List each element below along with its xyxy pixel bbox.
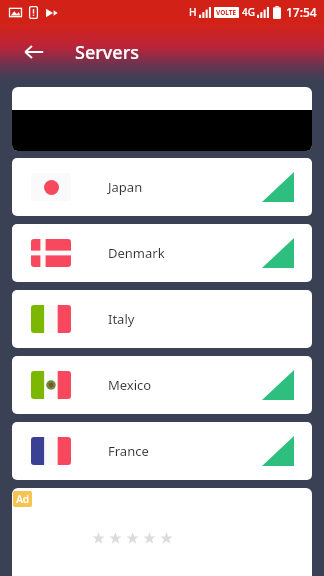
button[interactable]: Denmark — [12, 224, 312, 282]
staticText: Ad — [16, 492, 29, 506]
button[interactable]: Italy — [12, 290, 312, 348]
button[interactable]: Japan — [12, 158, 312, 216]
button[interactable]: France — [12, 422, 312, 480]
staticText: France — [108, 442, 149, 460]
staticText: Japan — [108, 178, 143, 196]
button[interactable] — [12, 87, 312, 151]
button[interactable]: Mexico — [12, 356, 312, 414]
staticText: H — [189, 5, 197, 19]
staticText: VOLTE — [216, 8, 237, 17]
staticText: Denmark — [108, 244, 165, 262]
staticText: Italy — [108, 310, 135, 328]
button[interactable]: Ad — [12, 488, 312, 576]
staticText: 17:54 — [286, 4, 317, 20]
staticText: 4G — [242, 5, 255, 19]
button[interactable]: Back — [12, 30, 56, 74]
staticText: Servers — [75, 40, 140, 65]
staticText: Mexico — [108, 376, 152, 394]
